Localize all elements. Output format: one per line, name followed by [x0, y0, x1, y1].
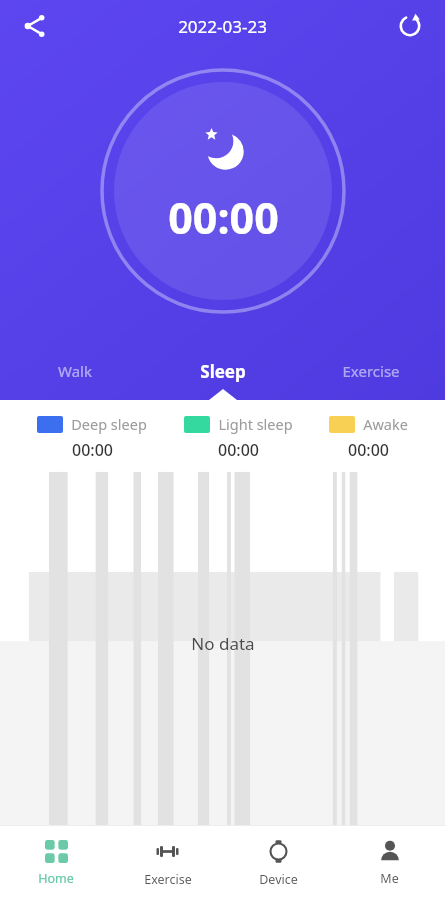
staticText: 00:00 [168, 188, 279, 247]
staticText: Me [380, 870, 399, 887]
staticText: Exercise [144, 871, 192, 888]
staticText: Exercise [342, 361, 400, 381]
button[interactable]: Me [334, 826, 445, 900]
button[interactable]: Walk [0, 342, 149, 400]
button[interactable]: Device [223, 826, 334, 900]
staticText: No data [191, 632, 255, 655]
staticText: Home [38, 870, 74, 887]
staticText: Device [259, 871, 298, 888]
button[interactable]: Share [14, 5, 56, 47]
staticText: Walk [58, 361, 92, 381]
staticText: 00:00 [348, 439, 389, 461]
button[interactable]: Home [0, 826, 112, 900]
staticText: 2022-03-23 [178, 15, 267, 38]
button[interactable]: Refresh [389, 5, 431, 47]
button[interactable]: Sleep [149, 342, 297, 400]
staticText: Awake [363, 414, 408, 434]
staticText: 00:00 [72, 439, 113, 461]
staticText: Light sleep [218, 414, 293, 434]
button[interactable]: Exercise [112, 826, 223, 900]
button[interactable]: Exercise [297, 342, 445, 400]
staticText: 00:00 [218, 439, 259, 461]
staticText: Deep sleep [71, 414, 147, 434]
staticText: Sleep [200, 360, 246, 383]
